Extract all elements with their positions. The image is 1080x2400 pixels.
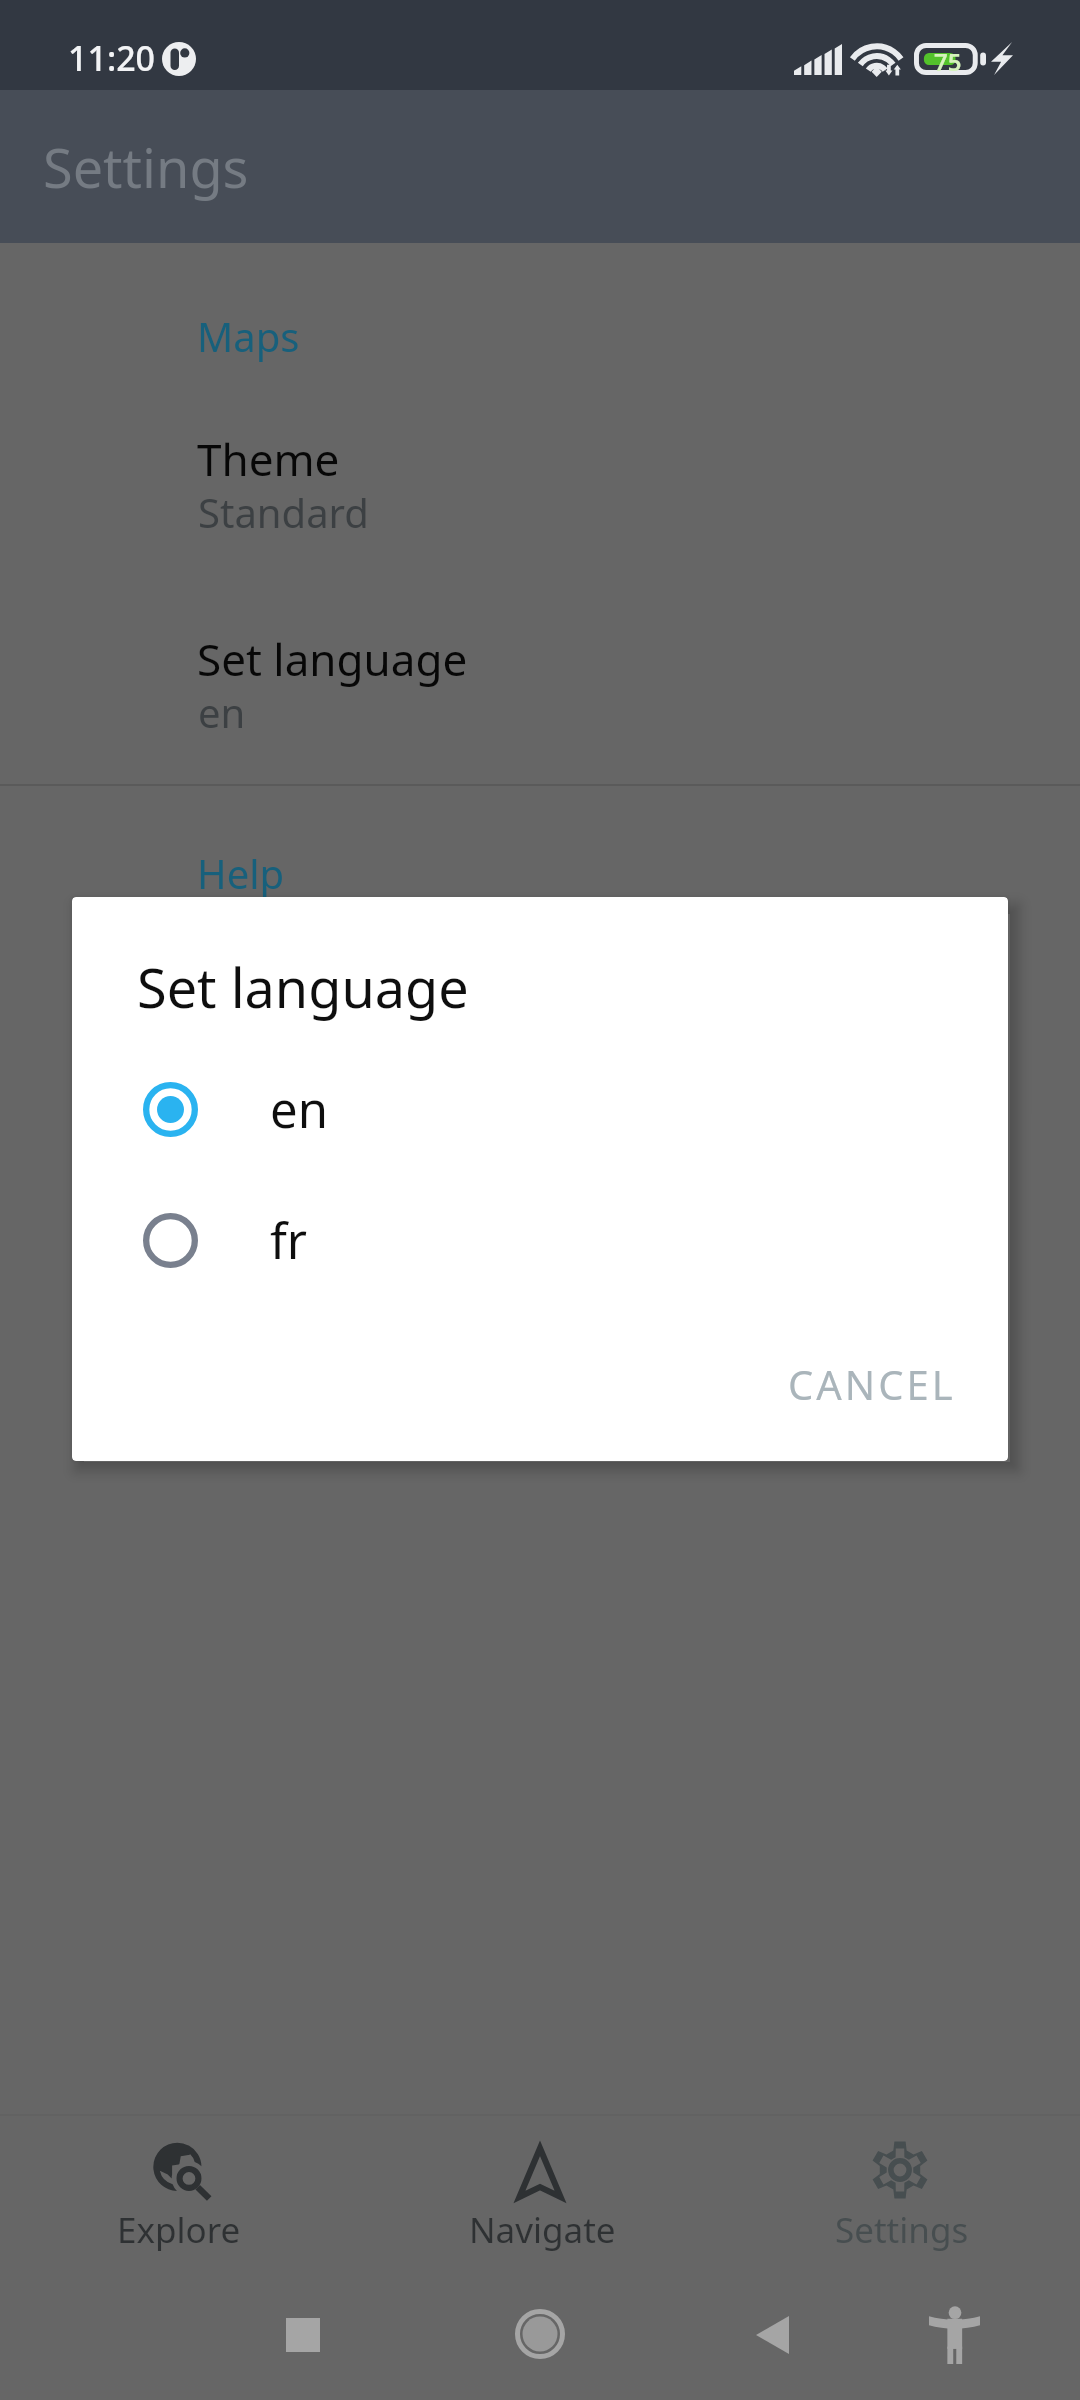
staticText: Standard — [198, 485, 369, 539]
button[interactable]: Home — [480, 2275, 600, 2395]
button[interactable]: Accessibility — [929, 2306, 980, 2364]
button[interactable]: Theme — [0, 399, 1080, 559]
staticText: Help — [197, 846, 285, 900]
staticText: en — [270, 1076, 328, 1143]
button[interactable]: CANCEL — [736, 1339, 1008, 1431]
staticText: Set language — [137, 950, 469, 1024]
staticText: fr — [270, 1207, 308, 1274]
staticText: CANCEL — [788, 1357, 956, 1411]
staticText: Settings — [835, 2206, 969, 2254]
staticText: 75 — [934, 45, 962, 77]
staticText: Maps — [197, 309, 300, 363]
button[interactable]: Set language — [0, 599, 1080, 759]
button[interactable]: Back — [713, 2275, 833, 2395]
button[interactable]: fr — [72, 1182, 1008, 1300]
staticText: Theme — [197, 429, 340, 489]
staticText: Set language — [197, 629, 468, 689]
button[interactable]: Navigate — [360, 2117, 720, 2256]
button[interactable]: Explore — [0, 2117, 360, 2256]
staticText: Navigate — [469, 2206, 616, 2254]
staticText: 11:20 — [68, 35, 156, 81]
staticText: Explore — [117, 2206, 241, 2254]
button[interactable]: Settings — [720, 2117, 1080, 2256]
staticText: Settings — [43, 130, 249, 204]
button[interactable]: en — [72, 1051, 1008, 1169]
staticText: en — [198, 685, 246, 739]
button[interactable]: Recents — [243, 2275, 363, 2395]
